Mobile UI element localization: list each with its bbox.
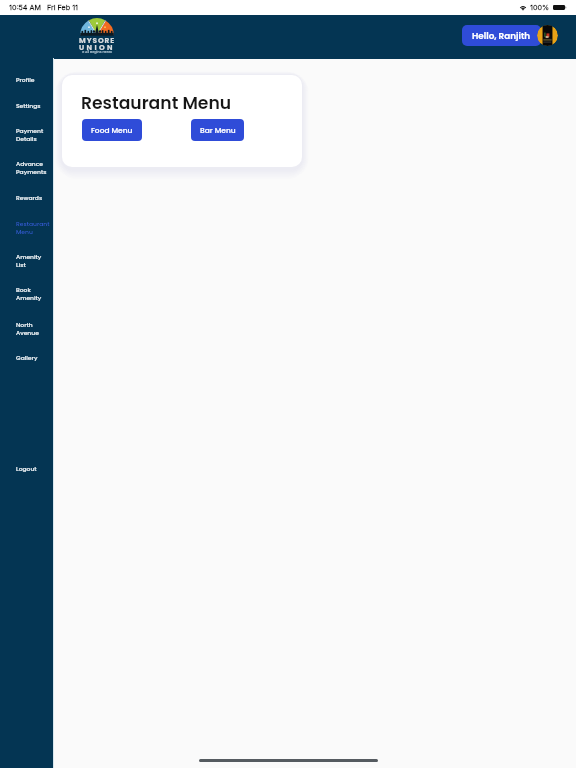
button[interactable]: North Avenue: [0, 316, 54, 342]
button[interactable]: Amenity List: [0, 248, 54, 274]
button[interactable]: Settings: [0, 97, 54, 115]
staticText: Bar Menu: [200, 125, 236, 135]
staticText: MYSORE: [79, 35, 116, 45]
button[interactable]: Bar Menu: [191, 119, 244, 141]
staticText: 10:54 AM: [9, 3, 41, 12]
staticText: Restaurant Menu: [16, 220, 50, 236]
staticText: Food Menu: [91, 125, 133, 135]
button[interactable]: Logout: [0, 460, 54, 478]
staticText: Book Amenity: [16, 286, 42, 302]
button[interactable]: Rewards: [0, 189, 54, 207]
button[interactable]: Hello, Ranjith: [462, 25, 541, 46]
staticText: Fri Feb 11: [47, 3, 78, 12]
staticText: Rewards: [16, 194, 43, 202]
button[interactable]: Profile: [0, 71, 54, 89]
staticText: UNION: [79, 42, 116, 52]
button[interactable]: Advance Payments: [0, 155, 54, 181]
button[interactable]: Gallery: [0, 349, 54, 367]
button[interactable]: Payment Details: [0, 122, 54, 148]
button[interactable]: Profile avatar: [537, 25, 558, 46]
staticText: Settings: [16, 102, 41, 110]
staticText: Gallery: [16, 354, 38, 362]
staticText: Advance Payments: [16, 160, 47, 176]
staticText: North Avenue: [16, 321, 39, 337]
staticText: Logout: [16, 465, 37, 473]
staticText: Profile: [16, 76, 35, 84]
button[interactable]: Restaurant Menu: [0, 215, 54, 241]
button[interactable]: Food Menu: [82, 119, 142, 141]
staticText: Restaurant Menu: [81, 91, 232, 115]
staticText: 100%: [530, 3, 550, 12]
staticText: Amenity List: [16, 253, 42, 269]
staticText: Hello, Ranjith: [472, 30, 531, 42]
button[interactable]: Book Amenity: [0, 281, 54, 307]
staticText: It All Begins Here!!: [82, 49, 113, 54]
staticText: Payment Details: [16, 127, 44, 143]
